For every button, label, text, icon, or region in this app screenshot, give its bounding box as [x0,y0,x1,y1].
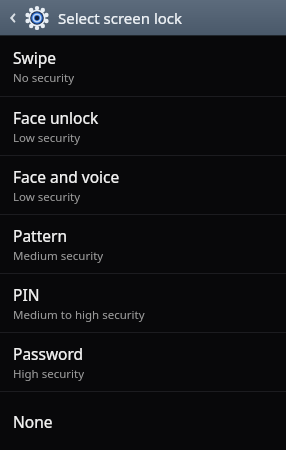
staticText: Pattern [13,225,67,246]
staticText: Low security [13,130,81,146]
staticText: Select screen lock [58,8,183,28]
button[interactable]: None [0,392,286,450]
staticText: High security [13,366,85,382]
staticText: Face and voice [13,166,120,187]
staticText: Password [13,343,84,364]
button[interactable]: PIN [0,274,286,332]
staticText: Face unlock [13,107,99,128]
button[interactable]: Face and voice [0,156,286,214]
button[interactable]: Password [0,333,286,391]
staticText: Swipe [13,47,56,68]
button[interactable]: Swipe [0,36,286,96]
button[interactable]: Face unlock [0,97,286,155]
staticText: No security [13,70,75,86]
staticText: None [13,411,53,432]
button[interactable]: Back [0,0,26,35]
button[interactable]: Pattern [0,215,286,273]
staticText: Low security [13,189,81,205]
staticText: PIN [13,284,40,305]
staticText: Medium to high security [13,307,145,323]
staticText: Medium security [13,248,104,264]
